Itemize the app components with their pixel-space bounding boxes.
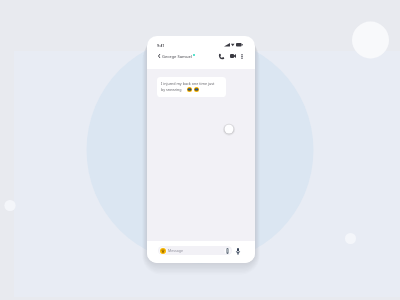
staticText: by sneezing (161, 87, 182, 92)
button[interactable]: George Samuel (162, 51, 212, 63)
staticText: Message (168, 248, 183, 253)
button[interactable]: Voice message (233, 246, 243, 255)
button[interactable]: More options (237, 50, 246, 62)
button[interactable]: Video call (227, 50, 238, 62)
button[interactable]: Message (158, 246, 232, 255)
button[interactable]: Call (216, 50, 227, 62)
button[interactable]: Back (152, 50, 165, 62)
button[interactable]: Attach file (223, 246, 231, 255)
staticText: 9:41 (157, 43, 165, 48)
button[interactable]: I injured my back one time just (157, 77, 226, 97)
staticText: I injured my back one time just (161, 81, 215, 86)
staticText: George Samuel (162, 54, 192, 60)
